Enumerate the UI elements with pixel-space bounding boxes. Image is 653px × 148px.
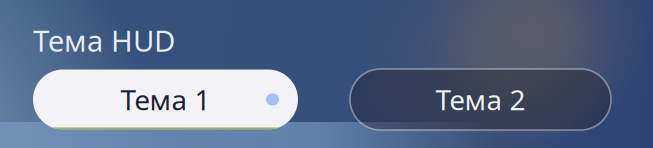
button[interactable]: Тема 1 [33,69,298,129]
staticText: Тема 2 [435,81,525,118]
button[interactable]: Тема 2 [350,69,611,130]
staticText: Тема 1 [120,81,210,118]
staticText: Тема HUD [33,21,175,60]
